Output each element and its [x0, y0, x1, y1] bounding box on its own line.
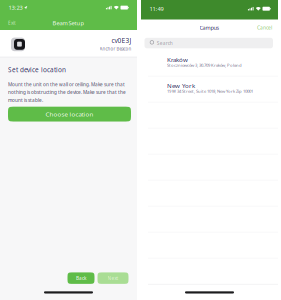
staticText: Choose location — [45, 110, 93, 118]
button[interactable]: Kraków — [141, 50, 278, 76]
staticText: Mount the unit on the wall or ceiling. M… — [8, 81, 125, 88]
button[interactable]: Next — [97, 272, 128, 284]
staticText: 19 W 34 Street, Suite 1018, New York Zip… — [167, 88, 253, 94]
staticText: Back — [76, 275, 86, 281]
staticText: Set device location — [8, 65, 66, 74]
staticText: New York — [167, 81, 195, 90]
staticText: nothing is obstructing the device. Make … — [8, 89, 126, 95]
staticText: Next — [107, 275, 118, 281]
staticText: Campus — [199, 24, 219, 31]
staticText: Anchor Beacon — [99, 46, 131, 52]
staticText: 13:23 — [8, 4, 22, 11]
staticText: Stoczniowców 3, 30-709 Kraków, Poland — [167, 62, 242, 68]
staticText: Beam Setup — [52, 19, 84, 27]
button[interactable]: New York — [141, 76, 278, 102]
staticText: Kraków — [167, 55, 188, 64]
staticText: Search — [157, 40, 173, 46]
button[interactable]: Cancel — [244, 21, 272, 35]
button[interactable]: Choose location — [8, 107, 131, 121]
staticText: 11:49 — [149, 5, 163, 13]
button[interactable]: Exit — [8, 16, 32, 29]
staticText: Cancel — [257, 24, 272, 31]
staticText: cv0E3J — [111, 36, 131, 45]
staticText: Exit — [8, 20, 16, 26]
button[interactable]: Back — [67, 272, 94, 284]
staticText: mount is stable. — [8, 97, 43, 103]
